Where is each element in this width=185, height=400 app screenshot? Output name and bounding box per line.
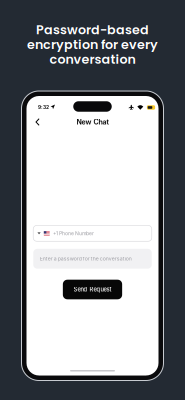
staticText: 9:32 — [38, 104, 49, 110]
staticText: encryption for every — [27, 36, 158, 53]
staticText: conversation — [49, 50, 135, 68]
button[interactable]: Send Request — [63, 280, 122, 299]
button[interactable]: Enter a password for the conversation — [33, 249, 152, 269]
staticText: Password-based — [36, 21, 149, 39]
staticText: New Chat — [76, 118, 108, 126]
staticText: Enter a password for the conversation — [40, 256, 132, 262]
button[interactable]: +1 Phone Number — [33, 225, 152, 241]
staticText: +1 Phone Number — [53, 230, 94, 236]
button[interactable]: Back — [31, 114, 44, 130]
staticText: Send Request — [73, 286, 111, 293]
